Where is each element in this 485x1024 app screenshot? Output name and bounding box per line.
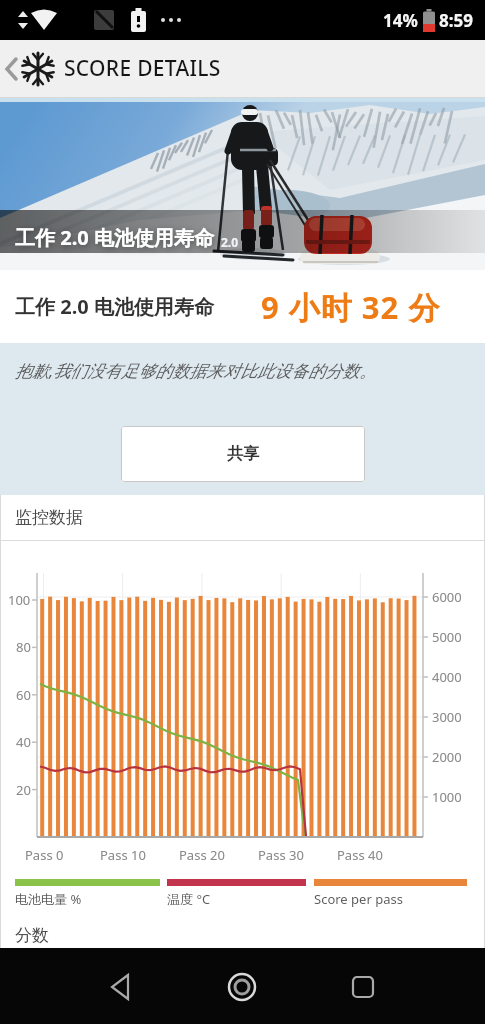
staticText: 8:59 — [439, 9, 473, 32]
staticText: 80 — [16, 638, 31, 656]
staticText: Pass 20 — [179, 846, 225, 864]
staticText: Pass 40 — [337, 846, 383, 864]
button[interactable] — [107, 973, 135, 1001]
staticText: Pass 0 — [25, 846, 64, 864]
button[interactable] — [227, 972, 257, 1002]
button[interactable]: 共享 — [121, 426, 365, 482]
button[interactable] — [350, 974, 376, 1000]
staticText: 监控数据 — [15, 507, 83, 528]
staticText: 1000 — [432, 788, 462, 806]
staticText: 工作 2.0 电池使用寿命 — [15, 293, 214, 320]
staticText: 60 — [16, 686, 31, 704]
staticText: 3000 — [432, 708, 462, 726]
staticText: 6000 — [432, 588, 462, 606]
staticText: 4000 — [432, 668, 462, 686]
staticText: 100 — [8, 591, 31, 609]
staticText: 9 小时 32 分 — [261, 286, 441, 328]
staticText: 2.0 — [221, 234, 239, 250]
staticText: 2000 — [432, 748, 462, 766]
staticText: Pass 30 — [258, 846, 304, 864]
staticText: 14% — [383, 9, 418, 32]
staticText: SCORE DETAILS — [64, 54, 221, 83]
staticText: 抱歉,我们没有足够的数据来对比此设备的分数。 — [15, 359, 377, 382]
staticText: 分数 — [15, 925, 49, 946]
staticText: Score per pass — [314, 890, 403, 908]
staticText: Pass 10 — [100, 846, 146, 864]
staticText: 5000 — [432, 628, 462, 646]
button[interactable]: SCORE DETAILS — [0, 40, 485, 97]
staticText: 共享 — [227, 444, 259, 464]
staticText: 电池电量 % — [15, 890, 82, 908]
staticText: 20 — [16, 781, 31, 799]
staticText: 温度 °C — [167, 890, 211, 908]
staticText: 40 — [16, 733, 31, 751]
staticText: 工作 2.0 电池使用寿命 — [15, 224, 214, 251]
